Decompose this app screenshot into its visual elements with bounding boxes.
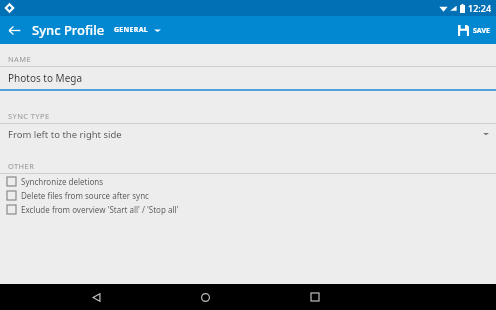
button[interactable]: From left to the right side bbox=[0, 124, 496, 144]
staticText: From left to the right side bbox=[8, 128, 122, 141]
button[interactable]: Back bbox=[83, 284, 109, 310]
staticText: Synchronize deletions bbox=[21, 176, 104, 187]
staticText: Delete files from source after sync bbox=[21, 190, 149, 201]
button[interactable]: Back bbox=[0, 16, 28, 44]
button[interactable]: Delete files from source after sync bbox=[0, 188, 496, 202]
button[interactable]: SAVE bbox=[451, 24, 496, 37]
staticText: OTHER bbox=[8, 161, 35, 171]
button[interactable]: GENERAL bbox=[114, 25, 161, 35]
button[interactable]: Synchronize deletions bbox=[0, 174, 496, 188]
staticText: 12:24 bbox=[468, 2, 492, 14]
staticText: Photos to Mega bbox=[8, 71, 83, 85]
staticText: NAME bbox=[8, 54, 32, 64]
button[interactable]: Recent apps bbox=[302, 284, 328, 310]
staticText: SYNC TYPE bbox=[8, 111, 50, 121]
button[interactable]: Home bbox=[192, 284, 218, 310]
button[interactable]: Exclude from overview 'Start all' / 'Sto… bbox=[0, 202, 496, 216]
staticText: SAVE bbox=[473, 26, 490, 36]
staticText: Sync Profile bbox=[32, 21, 105, 39]
button[interactable]: Photos to Mega bbox=[0, 67, 496, 91]
staticText: GENERAL bbox=[114, 25, 149, 35]
staticText: Exclude from overview 'Start all' / 'Sto… bbox=[21, 204, 179, 215]
